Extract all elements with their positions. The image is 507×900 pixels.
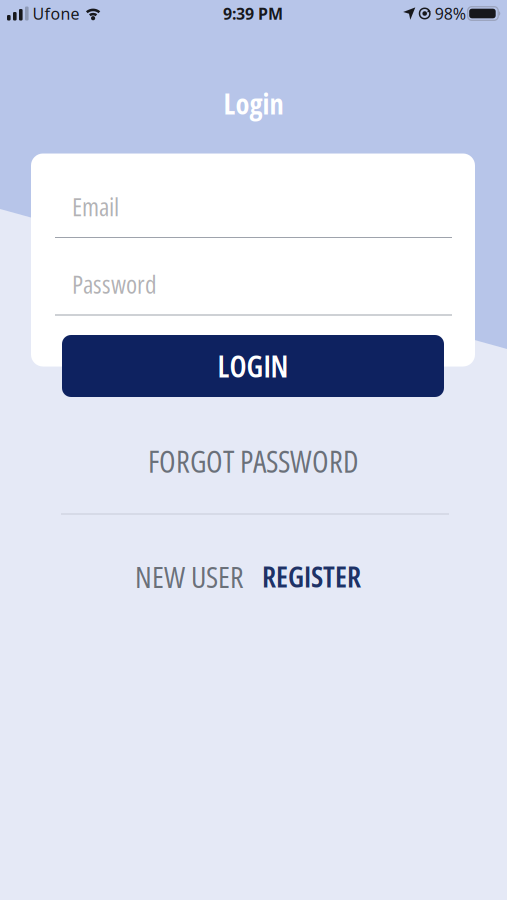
staticText: FORGOT PASSWORD xyxy=(148,440,359,482)
staticText: REGISTER xyxy=(262,557,361,596)
staticText: Login xyxy=(223,84,283,123)
staticText: Email xyxy=(72,189,119,224)
button[interactable]: Password xyxy=(45,267,461,331)
button[interactable]: LOGIN xyxy=(62,335,444,397)
staticText: 9:39 PM xyxy=(223,3,283,24)
button[interactable]: REGISTER xyxy=(241,559,381,593)
button[interactable]: FORGOT PASSWORD xyxy=(103,444,403,478)
staticText: LOGIN xyxy=(217,346,288,386)
staticText: NEW USER xyxy=(135,556,244,597)
button[interactable]: Email xyxy=(45,190,461,254)
staticText: 98% xyxy=(435,3,466,24)
staticText: Password xyxy=(72,267,157,301)
staticText: Ufone xyxy=(33,3,80,24)
